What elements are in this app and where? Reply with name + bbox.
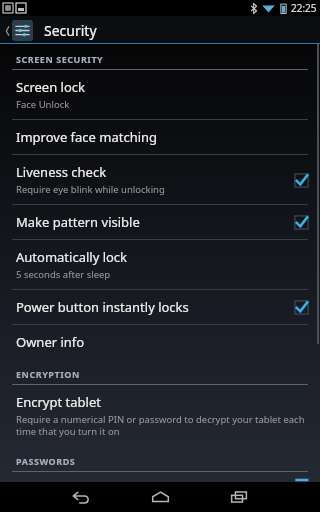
button[interactable]: Navigate up <box>3 20 35 41</box>
button[interactable]: Automatically lock <box>0 240 320 289</box>
button[interactable]: Checked <box>292 298 310 316</box>
staticText: Security <box>44 21 97 40</box>
staticText: Make pattern visible <box>16 213 140 231</box>
button[interactable]: Checked <box>292 171 310 189</box>
staticText: Power button instantly locks <box>16 298 189 316</box>
button[interactable]: Power button instantly locks <box>0 290 320 324</box>
staticText: ENCRYPTION <box>16 368 80 380</box>
staticText: 5 seconds after sleep <box>16 268 111 281</box>
button[interactable]: Back <box>55 482 107 512</box>
button[interactable]: Improve face matching <box>0 120 320 154</box>
staticText: Require eye blink while unlocking <box>16 183 165 196</box>
button[interactable]: Checked <box>292 213 310 231</box>
staticText: PASSWORDS <box>16 455 76 467</box>
button[interactable]: Make passwords visible <box>0 472 320 482</box>
button[interactable]: Screen lock <box>0 70 320 119</box>
staticText: Encrypt tablet <box>16 393 101 411</box>
staticText: SCREEN SECURITY <box>16 53 104 65</box>
button[interactable]: Owner info <box>0 325 320 359</box>
staticText: Owner info <box>16 333 85 351</box>
button[interactable]: Make pattern visible <box>0 205 320 239</box>
staticText: Improve face matching <box>16 128 158 146</box>
button[interactable]: Home <box>134 482 186 512</box>
staticText: Liveness check <box>16 163 107 181</box>
button[interactable]: Liveness check <box>0 155 320 204</box>
button[interactable]: Recent apps <box>213 482 265 512</box>
staticText: Screen lock <box>16 78 85 96</box>
staticText: Require a numerical PIN or password to d… <box>16 413 310 438</box>
staticText: Face Unlock <box>16 98 70 111</box>
staticText: Automatically lock <box>16 248 128 266</box>
button[interactable]: Encrypt tablet <box>0 385 320 446</box>
staticText: 22:25 <box>291 1 317 15</box>
